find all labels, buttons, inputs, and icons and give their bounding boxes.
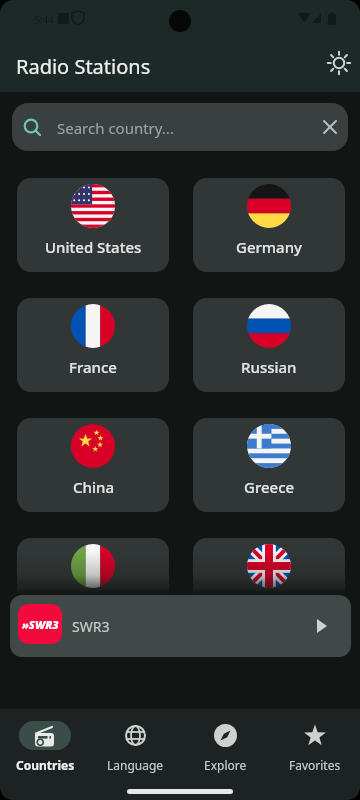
button[interactable]: Favorites	[270, 709, 360, 779]
staticText: Explore	[204, 757, 247, 773]
staticText: »SWR3	[22, 617, 59, 632]
button[interactable]: France	[17, 298, 169, 392]
staticText: 5:44	[34, 13, 54, 27]
button[interactable]: Greece	[193, 418, 345, 512]
button[interactable]: Language	[90, 709, 180, 779]
staticText: Radio Stations	[16, 53, 151, 80]
staticText: United States	[45, 237, 142, 257]
button[interactable]: »SWR3	[10, 595, 351, 657]
button[interactable]	[325, 49, 353, 77]
staticText: Language	[107, 757, 164, 773]
button[interactable]: China	[17, 418, 169, 512]
button[interactable]: Explore	[180, 709, 270, 779]
button[interactable]: Search country...	[12, 103, 348, 151]
button[interactable]: United States	[17, 178, 169, 272]
staticText: France	[69, 357, 117, 377]
staticText: Search country...	[57, 118, 174, 138]
button[interactable]: Italy	[17, 538, 169, 632]
button[interactable]: Germany	[193, 178, 345, 272]
staticText: Countries	[16, 757, 75, 773]
staticText: Favorites	[289, 757, 341, 773]
staticText: Germany	[236, 237, 302, 257]
button[interactable]: Countries	[0, 709, 90, 779]
staticText: Greece	[244, 477, 295, 497]
staticText: SWR3	[72, 617, 110, 636]
button[interactable]: Russian	[193, 298, 345, 392]
staticText: Russian	[241, 357, 297, 377]
button[interactable]: United Kingdom	[193, 538, 345, 632]
staticText: China	[73, 477, 114, 497]
